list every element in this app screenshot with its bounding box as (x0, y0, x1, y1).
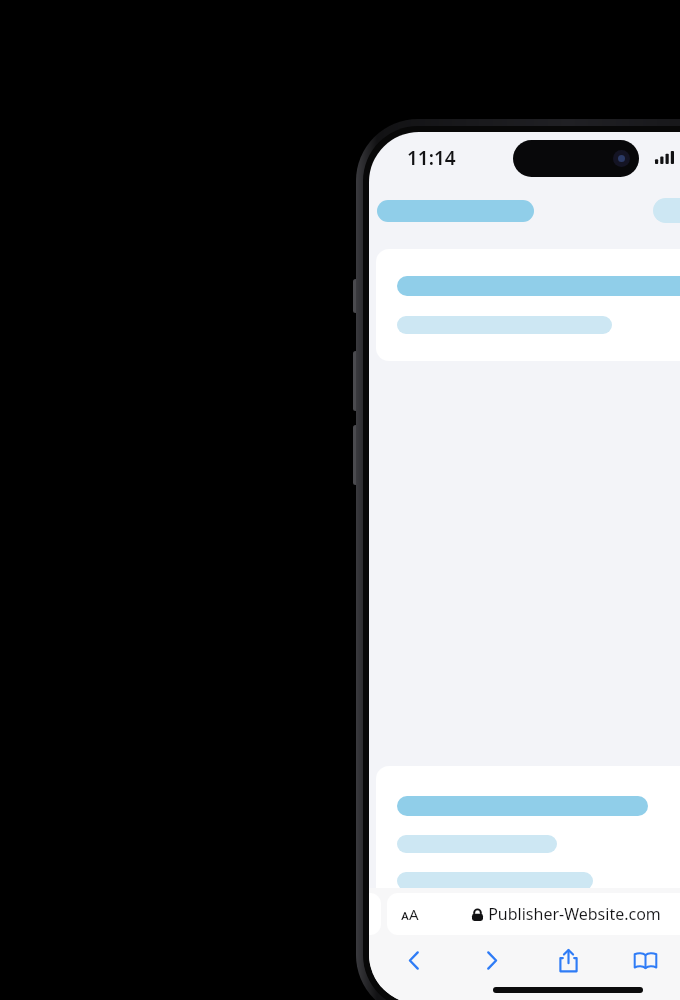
button[interactable]: Bookmarks (616, 938, 674, 982)
button[interactable]: Forward (462, 938, 520, 982)
staticText: Publisher-Website.com (488, 903, 661, 925)
button[interactable]: Menu item (653, 194, 680, 227)
button[interactable]: ᴀA (387, 893, 680, 935)
button[interactable] (377, 196, 534, 226)
staticText: ᴀA (401, 904, 419, 924)
button[interactable] (376, 766, 680, 947)
staticText: 11:14 (407, 145, 456, 171)
button[interactable] (376, 249, 680, 361)
button[interactable]: Back (385, 938, 443, 982)
button[interactable]: Share (539, 938, 597, 982)
